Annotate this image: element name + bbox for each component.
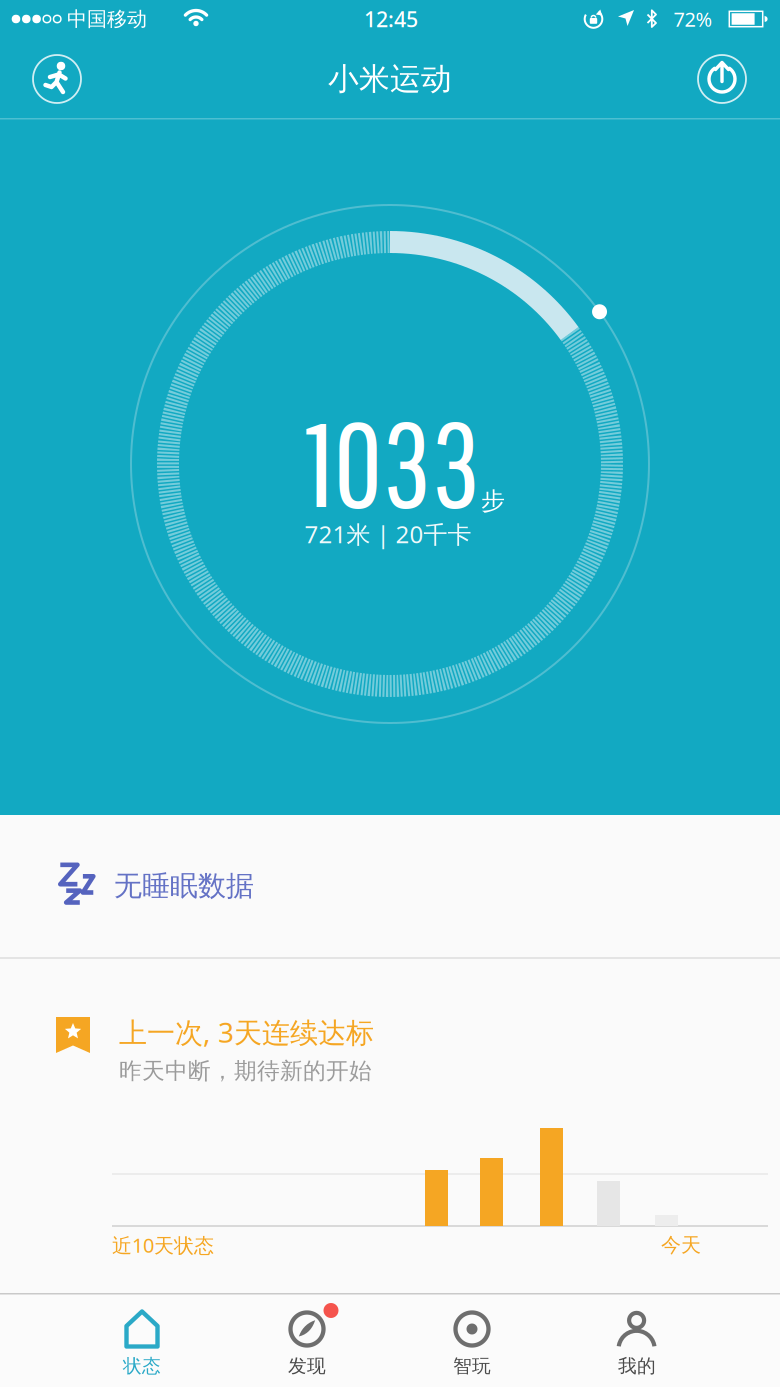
staticText: 步	[481, 486, 505, 516]
staticText: 今天	[661, 1233, 701, 1257]
staticText: 721米 | 20千卡	[304, 518, 471, 550]
staticText: 发现	[288, 1354, 326, 1377]
staticText: 近10天状态	[112, 1232, 214, 1258]
button[interactable]: 运动	[29, 51, 85, 107]
button[interactable]: 发现	[225, 1296, 389, 1387]
staticText: 上一次, 3天连续达标	[119, 1013, 374, 1051]
staticText: 中国移动	[67, 7, 147, 31]
staticText: 72%	[673, 6, 712, 32]
staticText: 小米运动	[328, 60, 452, 98]
staticText: 智玩	[453, 1354, 491, 1377]
button[interactable]: 无睡眠数据	[0, 815, 780, 957]
button[interactable]: 状态	[60, 1296, 224, 1387]
staticText: 昨天中断，期待新的开始	[119, 1057, 372, 1085]
button[interactable]: 我的	[555, 1296, 719, 1387]
button[interactable]: 智玩	[390, 1296, 554, 1387]
button[interactable]: 同步数据	[694, 51, 750, 107]
staticText: 无睡眠数据	[114, 869, 254, 903]
staticText: 1033	[305, 393, 480, 531]
staticText: 12:45	[364, 5, 418, 33]
button[interactable]: 上一次, 3天连续达标	[0, 959, 780, 1109]
staticText: 我的	[618, 1354, 656, 1377]
staticText: 状态	[123, 1354, 161, 1377]
